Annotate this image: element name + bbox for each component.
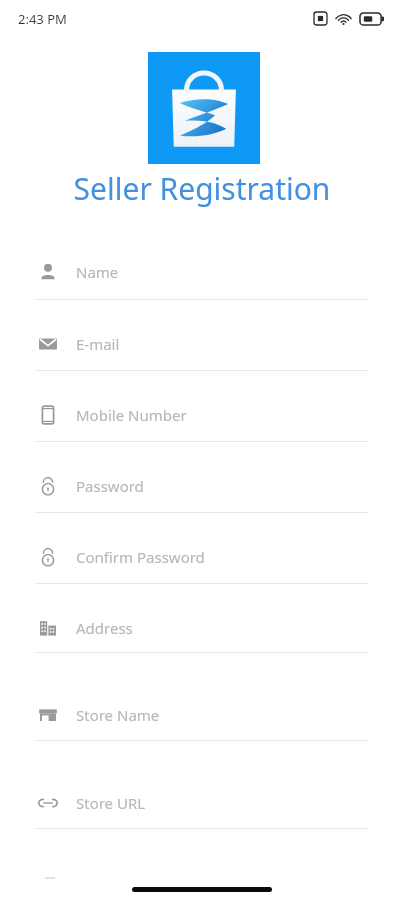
button[interactable]: Password: [0, 465, 404, 514]
button[interactable]: Name: [0, 251, 404, 301]
button[interactable]: Address: [0, 607, 404, 654]
staticText: Password: [76, 476, 144, 496]
button[interactable]: E-mail: [0, 323, 404, 372]
button[interactable]: Confirm Password: [0, 536, 404, 585]
staticText: E-mail: [76, 334, 120, 354]
button[interactable]: Store URL: [0, 782, 404, 830]
staticText: Store URL: [76, 793, 146, 813]
button[interactable]: Store Name: [0, 694, 404, 742]
other: App logo: [148, 52, 260, 164]
staticText: Address: [76, 618, 133, 638]
staticText: Name: [76, 262, 119, 282]
staticText: Seller Registration: [0, 168, 404, 209]
staticText: Confirm Password: [76, 547, 205, 567]
staticText: Store Name: [76, 705, 160, 725]
staticText: Mobile Number: [76, 405, 187, 425]
staticText: 2:43 PM: [18, 10, 67, 28]
button[interactable]: Mobile Number: [0, 394, 404, 443]
